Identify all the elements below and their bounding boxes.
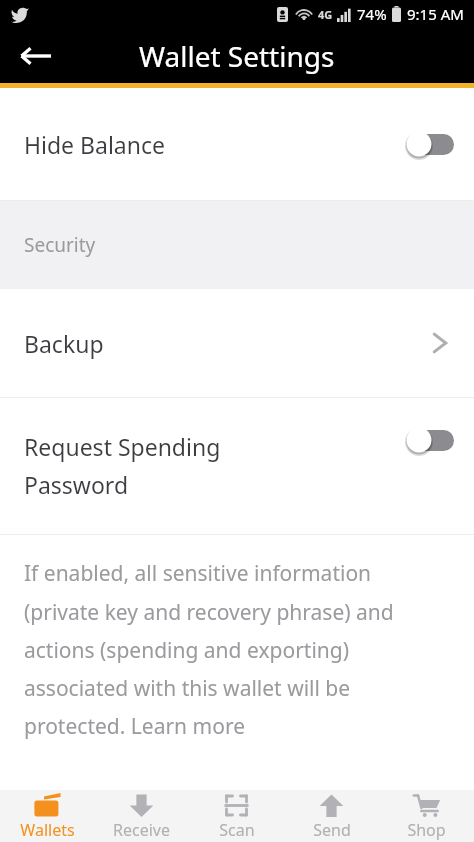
button[interactable]: Shop bbox=[379, 790, 474, 842]
staticText: 9:15 AM bbox=[407, 4, 464, 24]
staticText: Request Spending Password bbox=[24, 431, 221, 501]
staticText: Backup bbox=[24, 328, 428, 359]
button[interactable]: Toggle Request Spending Password bbox=[404, 424, 454, 456]
button[interactable]: Backup bbox=[0, 289, 474, 397]
staticText: Scan bbox=[219, 819, 255, 841]
staticText: 74% bbox=[357, 4, 387, 24]
staticText: Hide Balance bbox=[24, 129, 165, 160]
button[interactable]: Hide Balance bbox=[0, 88, 474, 200]
button[interactable]: Scan bbox=[189, 790, 284, 842]
staticText: Shop bbox=[407, 819, 446, 841]
staticText: 4G bbox=[318, 7, 333, 22]
staticText: Receive bbox=[113, 819, 170, 841]
button[interactable]: Wallets bbox=[0, 790, 94, 842]
staticText: Send bbox=[313, 819, 351, 841]
staticText: Security bbox=[24, 232, 96, 258]
button[interactable]: Send bbox=[284, 790, 379, 842]
button[interactable]: Toggle Hide Balance bbox=[404, 128, 454, 160]
staticText: Wallet Settings bbox=[139, 37, 335, 75]
staticText: If enabled, all sensitive information (p… bbox=[24, 559, 444, 740]
button[interactable]: Back bbox=[8, 29, 62, 83]
button[interactable]: Receive bbox=[94, 790, 189, 842]
button[interactable]: Request Spending Password bbox=[0, 398, 474, 534]
staticText: Wallets bbox=[20, 819, 75, 841]
